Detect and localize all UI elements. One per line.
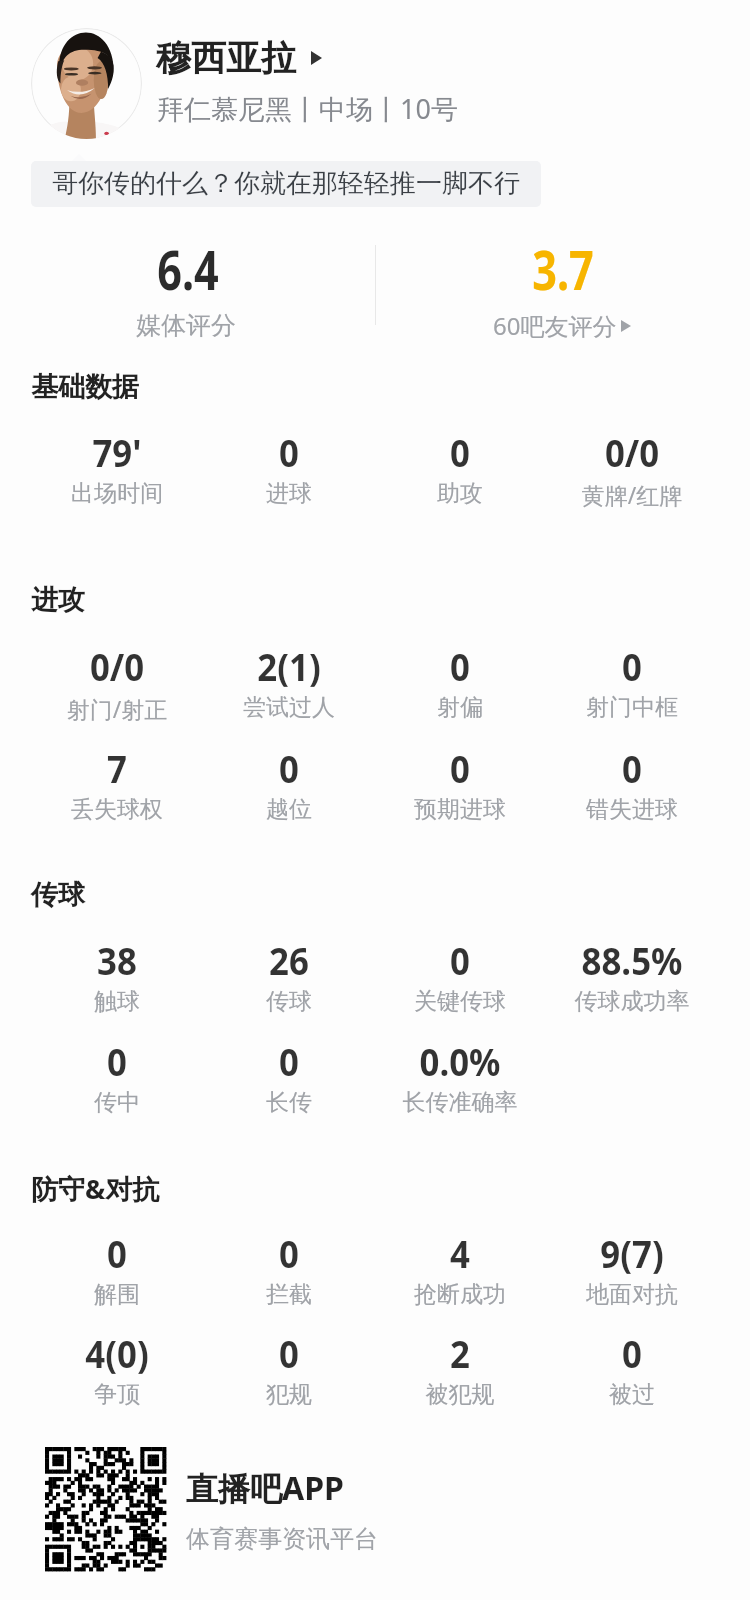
staticText: 0: [551, 1328, 713, 1378]
staticText: 体育赛事资讯平台: [186, 1524, 378, 1554]
staticText: 0: [379, 935, 541, 985]
staticText: 基础数据: [31, 370, 139, 404]
staticText: 4: [379, 1228, 541, 1278]
staticText: 被过: [546, 1380, 718, 1409]
button[interactable]: 6.4: [0, 240, 375, 340]
staticText: 传球: [31, 878, 85, 912]
staticText: 0: [551, 743, 713, 793]
staticText: 0/0: [551, 427, 713, 477]
staticText: 0: [208, 1328, 370, 1378]
staticText: 哥你传的什么？你就在那轻轻推一脚不行: [52, 167, 520, 200]
staticText: 争顶: [31, 1380, 203, 1409]
staticText: 0.0%: [379, 1036, 541, 1086]
staticText: 抢断成功: [374, 1280, 546, 1309]
staticText: 关键传球: [374, 987, 546, 1016]
staticText: 0: [208, 743, 370, 793]
staticText: 助攻: [374, 479, 546, 508]
staticText: 2(1): [208, 641, 370, 691]
staticText: 长传准确率: [374, 1088, 546, 1117]
staticText: 拦截: [203, 1280, 375, 1309]
staticText: 38: [36, 935, 198, 985]
staticText: 0: [379, 427, 541, 477]
other: Scan QR code to download the app: [45, 1447, 166, 1571]
staticText: 0: [379, 641, 541, 691]
staticText: 解围: [31, 1280, 203, 1309]
staticText: 射门/射正: [31, 693, 203, 724]
staticText: 0: [36, 1036, 198, 1086]
staticText: 传球: [203, 987, 375, 1016]
staticText: 2: [379, 1328, 541, 1378]
staticText: 尝试过人: [203, 693, 375, 722]
button[interactable]: 哥你传的什么？你就在那轻轻推一脚不行: [31, 161, 541, 207]
staticText: 犯规: [203, 1380, 375, 1409]
staticText: 媒体评分: [100, 310, 272, 341]
staticText: 0/0: [36, 641, 198, 691]
staticText: 0: [551, 641, 713, 691]
button[interactable]: Scan QR code to download the app: [45, 1447, 385, 1572]
staticText: 出场时间: [31, 479, 203, 508]
staticText: 穆西亚拉: [156, 36, 296, 80]
staticText: 地面对抗: [546, 1280, 718, 1309]
staticText: 26: [208, 935, 370, 985]
staticText: 0: [208, 1036, 370, 1086]
staticText: 88.5%: [551, 935, 713, 985]
staticText: 预期进球: [374, 795, 546, 824]
staticText: 防守&对抗: [31, 1170, 160, 1207]
staticText: 长传: [203, 1088, 375, 1117]
staticText: 黄牌/红牌: [546, 479, 718, 510]
staticText: 直播吧APP: [186, 1466, 344, 1510]
staticText: 越位: [203, 795, 375, 824]
staticText: 错失进球: [546, 795, 718, 824]
staticText: 9(7): [551, 1228, 713, 1278]
staticText: 60吧友评分: [493, 309, 617, 342]
staticText: 4(0): [36, 1328, 198, 1378]
staticText: 被犯规: [374, 1380, 546, 1409]
staticText: 丢失球权: [31, 795, 203, 824]
button[interactable]: 3.7: [375, 240, 750, 340]
staticText: 传球成功率: [546, 987, 718, 1016]
staticText: 0: [208, 427, 370, 477]
staticText: 射偏: [374, 693, 546, 722]
button[interactable]: 穆西亚拉: [156, 36, 322, 80]
staticText: 7: [36, 743, 198, 793]
staticText: 触球: [31, 987, 203, 1016]
staticText: 进攻: [31, 583, 85, 617]
staticText: 3.7: [494, 232, 632, 306]
staticText: 79': [36, 427, 198, 477]
staticText: 拜仁慕尼黑丨中场丨10号: [157, 90, 458, 127]
staticText: 0: [208, 1228, 370, 1278]
staticText: 6.4: [119, 232, 257, 306]
staticText: 射门中框: [546, 693, 718, 722]
staticText: 进球: [203, 479, 375, 508]
staticText: 传中: [31, 1088, 203, 1117]
staticText: 0: [36, 1228, 198, 1278]
staticText: 0: [379, 743, 541, 793]
button[interactable]: Player avatar: [31, 28, 142, 139]
